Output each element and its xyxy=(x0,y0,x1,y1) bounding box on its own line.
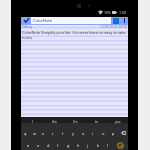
staticText: i xyxy=(92,131,94,136)
button[interactable]: w xyxy=(30,128,39,138)
staticText: to xyxy=(95,120,99,124)
staticText: 12/20/18 01:33 PM xyxy=(100,25,127,29)
staticText: w xyxy=(33,131,37,136)
button[interactable]: f xyxy=(53,140,63,150)
staticText: 1:33 xyxy=(119,11,126,15)
button[interactable]: o xyxy=(98,128,108,138)
staticText: r xyxy=(52,131,54,136)
button[interactable]: q xyxy=(21,128,30,138)
button[interactable]: u xyxy=(78,128,88,138)
button[interactable]: j xyxy=(83,140,93,150)
staticText: p xyxy=(112,131,115,136)
staticText: d xyxy=(47,143,50,148)
staticText: I'm xyxy=(73,120,78,124)
button[interactable]: More options xyxy=(120,17,128,24)
staticText: 15% xyxy=(104,11,111,15)
staticText: e xyxy=(42,131,45,136)
staticText: j xyxy=(87,143,89,148)
staticText: Editing xyxy=(22,25,32,29)
button[interactable]: Save note xyxy=(21,17,31,24)
button[interactable]: r xyxy=(48,128,58,138)
staticText: g xyxy=(67,143,70,148)
staticText: u xyxy=(82,131,85,136)
staticText: the xyxy=(52,120,57,124)
staticText: ColorNote Simplify your life. It's never… xyxy=(22,30,126,40)
staticText: you xyxy=(115,120,121,124)
staticText: y xyxy=(72,131,74,136)
staticText: f xyxy=(57,143,59,148)
staticText: t xyxy=(62,131,64,136)
button[interactable]: e xyxy=(39,128,48,138)
button[interactable]: i xyxy=(88,128,98,138)
staticText: ColorNote xyxy=(33,18,52,23)
button[interactable]: ColorNote xyxy=(31,17,111,24)
button[interactable]: the xyxy=(43,117,65,123)
button[interactable]: you xyxy=(107,117,128,123)
button[interactable]: g xyxy=(63,140,73,150)
button[interactable]: s xyxy=(33,140,43,150)
button[interactable]: t xyxy=(58,128,68,138)
button[interactable]: d xyxy=(43,140,53,150)
staticText: I xyxy=(32,120,33,124)
button[interactable]: Enter xyxy=(113,140,128,150)
button[interactable]: k xyxy=(93,140,103,150)
staticText: o xyxy=(102,131,105,136)
button[interactable]: a xyxy=(24,140,33,150)
staticText: s xyxy=(37,143,40,148)
button[interactable]: I xyxy=(21,117,43,123)
button[interactable]: y xyxy=(68,128,78,138)
button[interactable]: p xyxy=(108,128,118,138)
button[interactable]: I'm xyxy=(65,117,86,123)
staticText: q xyxy=(24,131,27,136)
button[interactable]: l xyxy=(103,140,113,150)
button[interactable]: Note colour xyxy=(111,17,120,24)
button[interactable]: Backspace xyxy=(118,128,128,138)
button[interactable]: to xyxy=(86,117,107,123)
staticText: a xyxy=(27,143,30,148)
button[interactable]: h xyxy=(73,140,83,150)
staticText: l xyxy=(107,143,109,148)
staticText: k xyxy=(97,143,100,148)
staticText: h xyxy=(77,143,80,148)
